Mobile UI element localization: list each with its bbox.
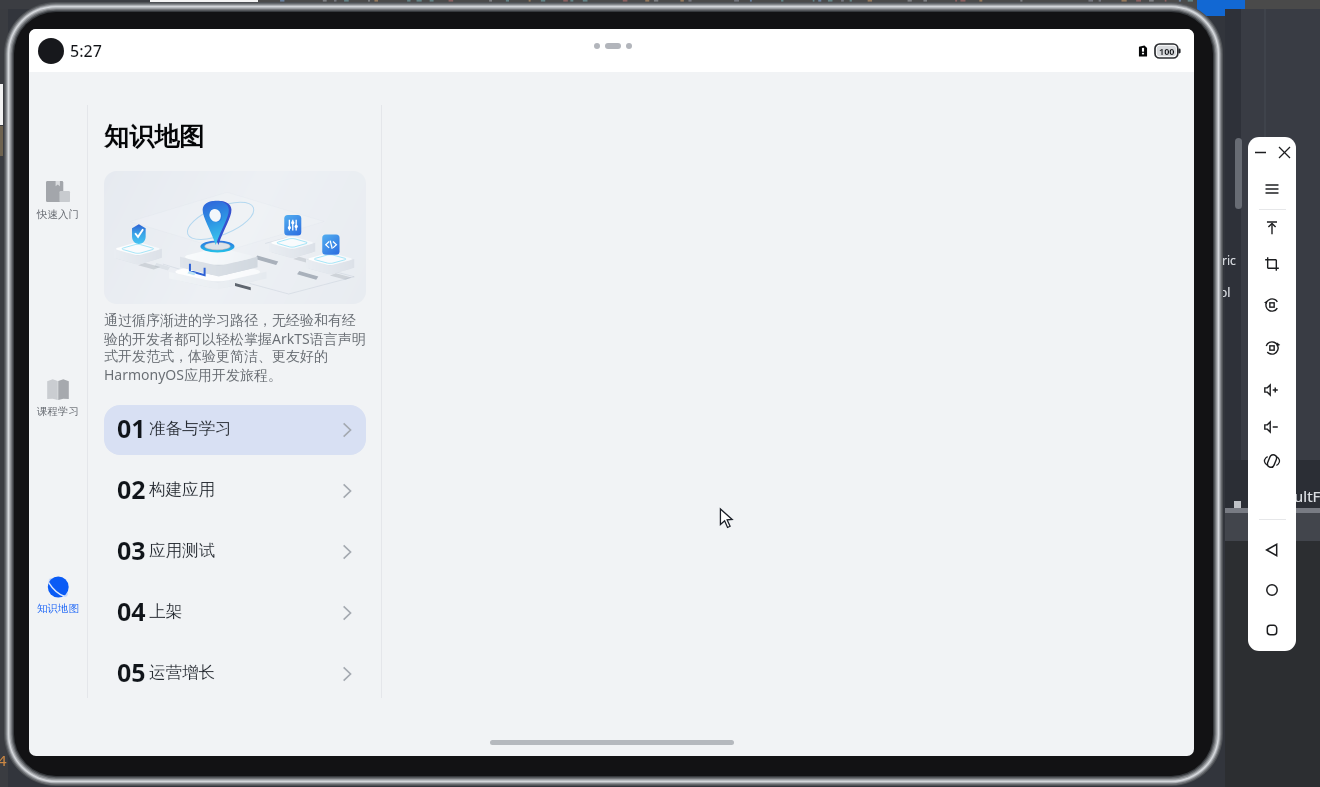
button[interactable]: Rotate device bbox=[1248, 444, 1296, 478]
staticText: 知识地图 bbox=[104, 121, 204, 152]
staticText: 运营增长 bbox=[149, 662, 215, 683]
staticText: 5:27 bbox=[70, 40, 102, 62]
staticText: 01 bbox=[117, 411, 146, 445]
button[interactable]: Recent apps bbox=[1248, 613, 1296, 647]
staticText: 03 bbox=[117, 533, 146, 567]
button[interactable]: 01 bbox=[104, 405, 366, 455]
staticText: 课程学习 bbox=[37, 405, 79, 418]
button[interactable]: 04 bbox=[104, 588, 366, 638]
staticText: 准备与学习 bbox=[149, 418, 232, 439]
button[interactable]: 03 bbox=[104, 527, 366, 577]
staticText: ric bbox=[1222, 252, 1236, 268]
staticText: 上架 bbox=[149, 601, 182, 622]
staticText: 02 bbox=[117, 472, 146, 506]
button[interactable]: 知识地图 bbox=[29, 575, 87, 615]
button[interactable]: Home bbox=[1248, 573, 1296, 607]
button[interactable]: Volume up bbox=[1248, 373, 1296, 407]
button[interactable]: Minimize bbox=[1248, 141, 1272, 163]
button[interactable]: 快速入门 bbox=[29, 181, 87, 221]
staticText: 通过循序渐进的学习路径，无经验和有经验的开发者都可以轻松掌握ArkTS语言声明式… bbox=[104, 312, 366, 384]
button[interactable]: Rotate screen bbox=[1248, 331, 1296, 365]
button[interactable]: Power bbox=[1248, 210, 1296, 244]
button[interactable]: Volume down bbox=[1248, 410, 1296, 444]
staticText: 05 bbox=[117, 655, 146, 689]
staticText: 应用测试 bbox=[149, 540, 215, 561]
staticText: ol bbox=[1220, 284, 1231, 300]
staticText: 构建应用 bbox=[149, 479, 215, 500]
staticText: ultFo bbox=[1294, 486, 1320, 506]
staticText: 快速入门 bbox=[37, 208, 79, 221]
staticText: 知识地图 bbox=[37, 602, 79, 615]
button[interactable]: Menu bbox=[1248, 172, 1296, 206]
button[interactable]: 课程学习 bbox=[29, 378, 87, 418]
button[interactable]: Screenshot bbox=[1248, 247, 1296, 281]
button[interactable]: 02 bbox=[104, 466, 366, 516]
button[interactable]: Back bbox=[1248, 533, 1296, 567]
staticText: 04 bbox=[117, 594, 146, 628]
button[interactable]: Close bbox=[1272, 141, 1296, 163]
staticText: 4 bbox=[0, 750, 7, 770]
staticText: 100 bbox=[1159, 45, 1175, 57]
button[interactable]: Record screen bbox=[1248, 288, 1296, 322]
button[interactable]: 05 bbox=[104, 649, 366, 699]
